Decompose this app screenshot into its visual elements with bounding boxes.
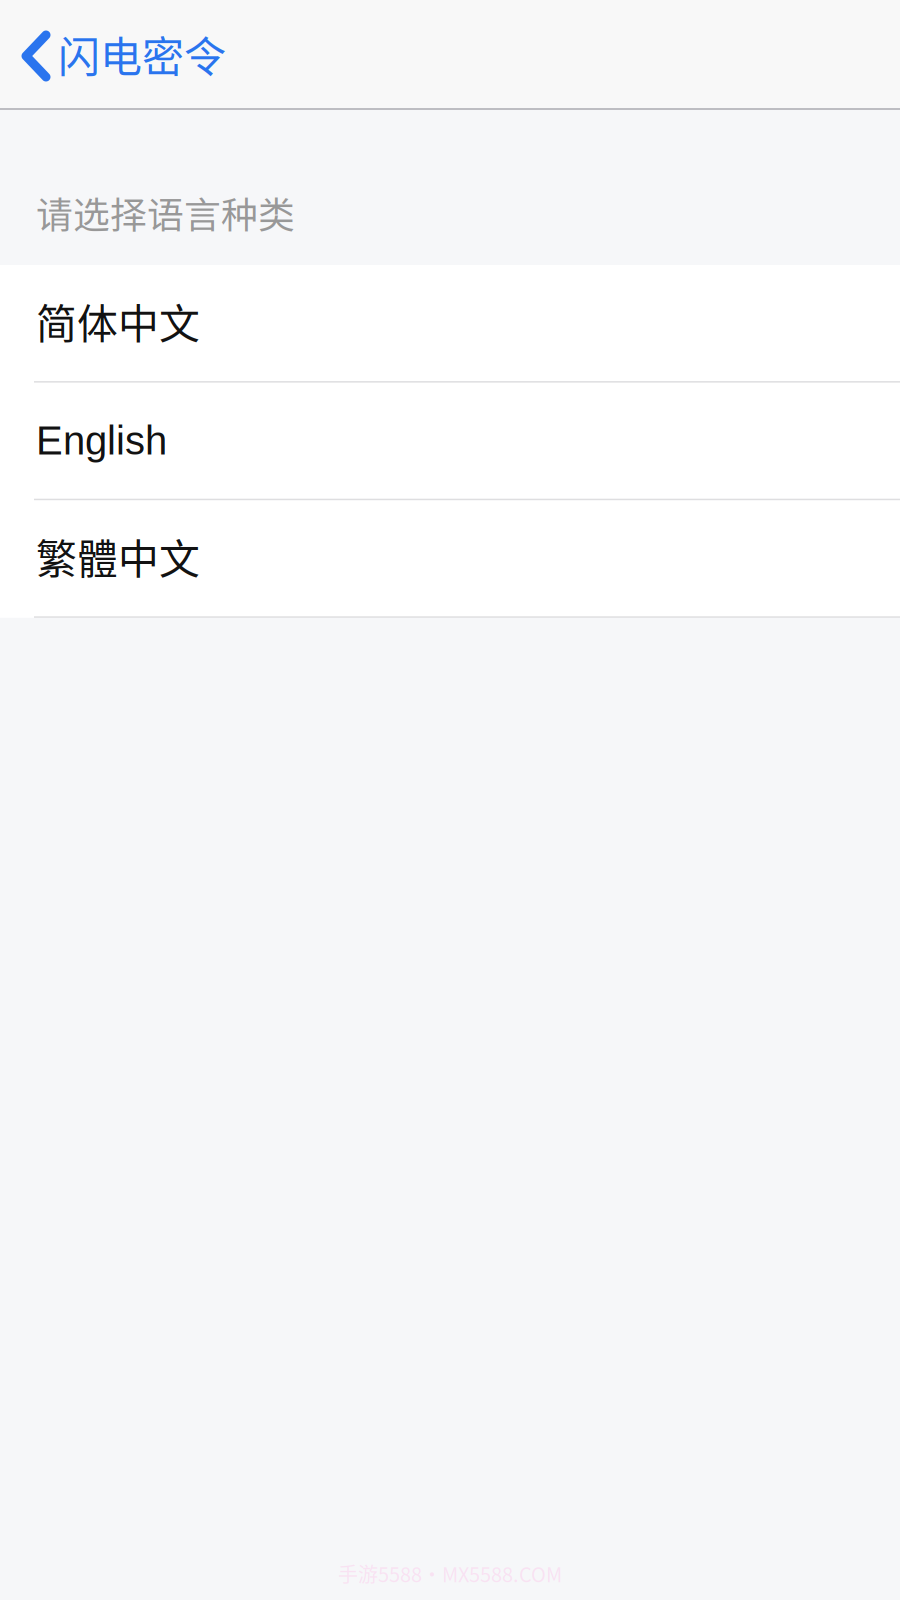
staticText: 请选择语言种类 [36, 186, 295, 239]
staticText: 简体中文 [36, 291, 200, 351]
staticText: 繁體中文 [36, 527, 200, 586]
button[interactable]: English [0, 383, 900, 500]
staticText: 手游5588・MX5588.COM [338, 1559, 562, 1588]
button[interactable]: 返回 闪电密令 [0, 0, 244, 108]
button[interactable]: 简体中文 [0, 265, 900, 383]
staticText: English [36, 418, 167, 463]
staticText: 闪电密令 [58, 24, 226, 84]
button[interactable]: 繁體中文 [0, 500, 900, 618]
